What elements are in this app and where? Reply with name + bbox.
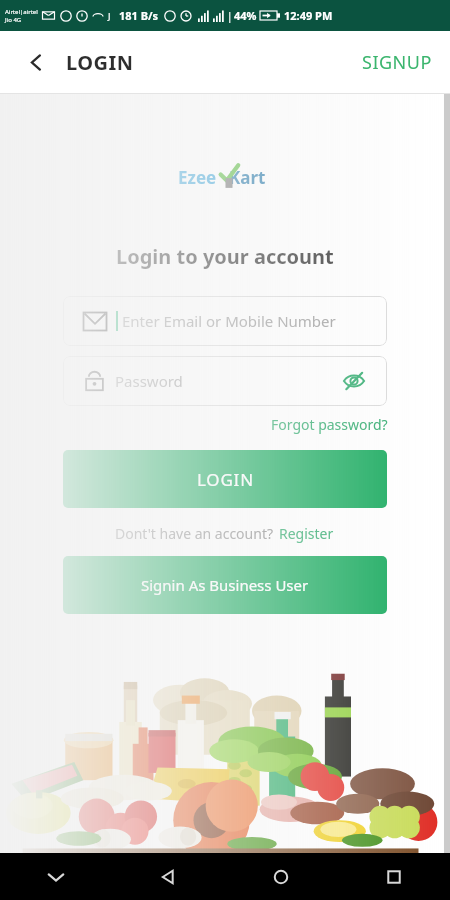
button[interactable]: Forgot password? <box>269 413 390 436</box>
staticText: | <box>227 9 233 23</box>
button[interactable]: Home <box>224 853 337 900</box>
staticText: Kart <box>229 166 266 189</box>
staticText: J <box>108 10 111 22</box>
staticText: Dont't have an account? <box>115 524 277 543</box>
staticText: Airtel|airtel <box>5 8 38 16</box>
button[interactable]: Back <box>18 44 54 80</box>
staticText: SIGNUP <box>362 50 432 75</box>
button[interactable]: LOGIN <box>63 450 387 508</box>
staticText: Jio 4G <box>5 16 22 24</box>
button[interactable]: SIGNUP <box>354 44 440 81</box>
button[interactable]: Password <box>63 356 387 406</box>
staticText: Signin As Business User <box>141 575 309 595</box>
button[interactable]: Signin As Business User <box>63 556 387 614</box>
staticText: Enter Email or Mobile Number <box>122 311 336 331</box>
button[interactable]: Back <box>112 853 224 900</box>
button[interactable]: Register <box>277 524 336 543</box>
staticText: Forgot password? <box>271 415 388 434</box>
staticText: 44% <box>234 8 257 23</box>
button[interactable]: Recents <box>337 853 450 900</box>
staticText: Login to your account <box>116 243 334 270</box>
staticText: LOGIN <box>197 468 254 491</box>
staticText: 12:49 PM <box>284 8 333 23</box>
staticText: Ezee <box>178 166 217 189</box>
button[interactable]: Enter Email or Mobile Number <box>63 296 387 346</box>
staticText: 181 B/s <box>119 8 159 23</box>
staticText: LOGIN <box>66 49 134 76</box>
button[interactable]: Hide keyboard <box>0 853 112 900</box>
staticText: Password <box>115 371 339 391</box>
button[interactable]: Show password <box>339 366 369 396</box>
staticText: Register <box>279 524 334 543</box>
